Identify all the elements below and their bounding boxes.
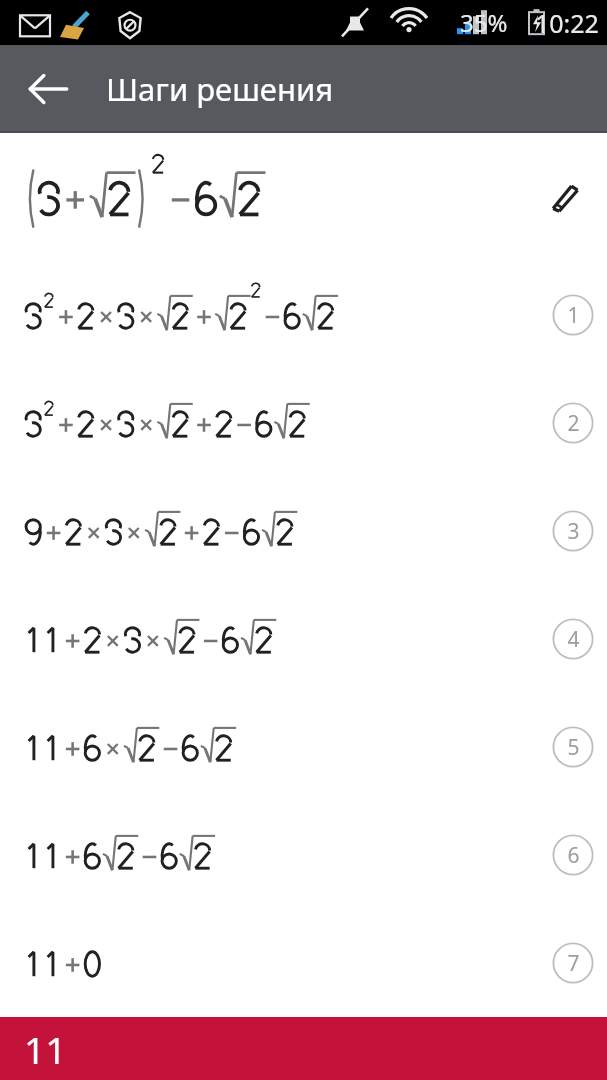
staticText: 7 [567,949,580,978]
staticText: 10:22 [535,6,599,40]
button[interactable]: Back [22,63,74,115]
button[interactable]: 1 [0,261,607,369]
button[interactable]: 1 [551,293,595,337]
button[interactable]: 6 [551,833,595,877]
staticText: 3 [567,517,580,546]
button[interactable]: 7 [0,909,607,1017]
button[interactable]: Edit expression [537,168,595,226]
staticText: 6 [567,841,580,870]
button[interactable]: 4 [0,585,607,693]
staticText: 5 [567,733,580,762]
staticText: 35% [460,6,508,39]
button[interactable]: 3 [551,509,595,553]
staticText: 2 [567,409,580,438]
button[interactable]: 3 [0,477,607,585]
staticText: 11 [24,1024,67,1074]
button[interactable]: 5 [551,725,595,769]
staticText: 1 [567,301,580,330]
button[interactable]: 11 [0,1017,607,1080]
staticText: Шаги решения [106,68,334,110]
button[interactable]: 7 [551,941,595,985]
button[interactable]: 2 [551,401,595,445]
button[interactable]: 5 [0,693,607,801]
button[interactable]: 2 [0,369,607,477]
staticText: 4 [567,625,580,654]
button[interactable]: 6 [0,801,607,909]
button[interactable]: 4 [551,617,595,661]
